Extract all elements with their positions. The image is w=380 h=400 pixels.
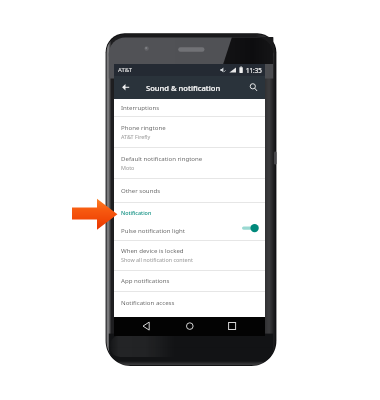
button[interactable]: App notifications xyxy=(114,271,265,291)
staticText: Sound & notification xyxy=(146,83,221,93)
button[interactable]: Phone ringtone xyxy=(114,117,265,147)
staticText: Interruptions xyxy=(121,103,160,111)
staticText: Notification access xyxy=(121,298,175,306)
button[interactable]: Notification access xyxy=(114,292,265,314)
button[interactable]: Home xyxy=(183,320,195,332)
staticText: Default notification ringtone xyxy=(121,154,203,162)
staticText: Other sounds xyxy=(121,186,161,194)
staticText: Phone ringtone xyxy=(121,123,166,131)
staticText: 11:35 xyxy=(246,66,262,74)
button[interactable]: When device is locked xyxy=(114,241,265,270)
staticText: AT&T Firefly xyxy=(121,133,151,140)
staticText: Show all notification content xyxy=(121,256,193,263)
button[interactable]: Pulse notification light xyxy=(114,221,265,240)
button[interactable]: Search xyxy=(243,76,265,99)
staticText: App notifications xyxy=(121,276,170,284)
button[interactable]: Default notification ringtone xyxy=(114,148,265,178)
button[interactable]: Interruptions xyxy=(114,99,265,116)
button[interactable]: Recent apps xyxy=(225,320,237,332)
button[interactable]: Other sounds xyxy=(114,179,265,202)
button[interactable]: Back xyxy=(140,320,152,332)
staticText: Pulse notification light xyxy=(121,226,185,234)
staticText: Notification xyxy=(121,209,152,216)
button[interactable]: Navigate up xyxy=(114,76,136,99)
staticText: AT&T xyxy=(118,66,132,74)
staticText: When device is locked xyxy=(121,246,184,254)
staticText: Moto xyxy=(121,164,135,171)
